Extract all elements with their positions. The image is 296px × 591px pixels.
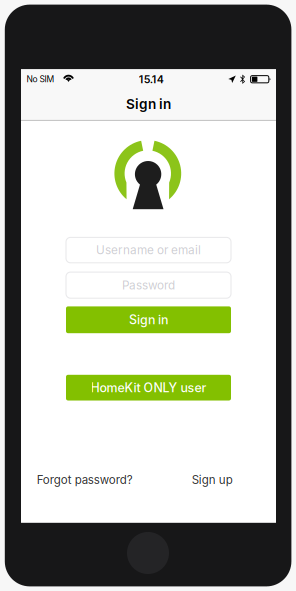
staticText: Password [122,278,175,292]
staticText: Username or email [96,243,201,257]
staticText: Forgot password? [37,473,133,487]
staticText: Sign in [126,96,171,112]
button[interactable]: HomeKit ONLY user [66,375,231,400]
staticText: 15.14 [139,73,164,86]
staticText: Sign in [129,312,168,327]
button[interactable]: Forgot password? [21,468,148,492]
staticText: HomeKit ONLY user [90,380,206,395]
button[interactable]: Sign in [66,306,231,333]
staticText: Sign up [192,473,233,487]
button[interactable]: Sign up [148,468,276,492]
staticText: No SIM [26,74,54,84]
